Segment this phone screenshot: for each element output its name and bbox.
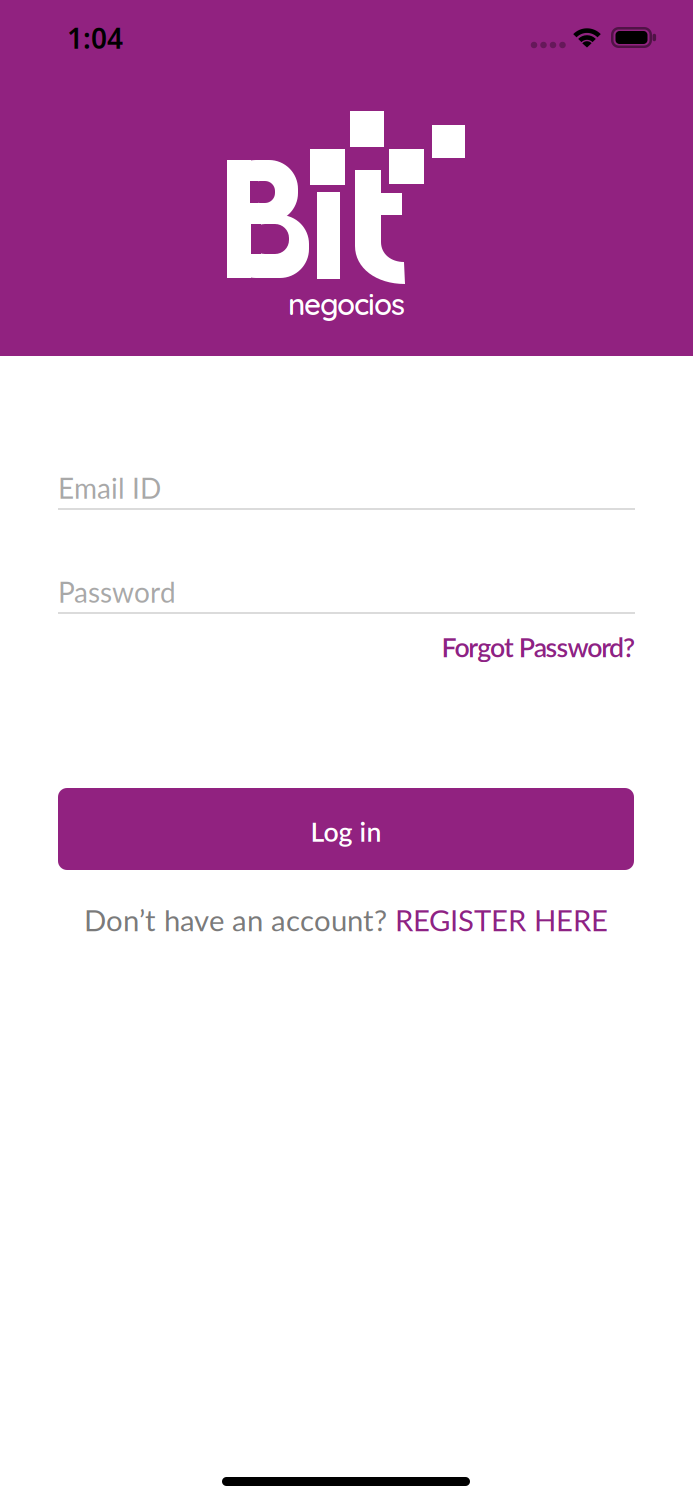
staticText: REGISTER HERE [395,902,608,938]
button[interactable]: REGISTER HERE [395,902,608,938]
staticText: Don’t have an account? [84,902,387,938]
button[interactable]: Forgot Password? [441,631,635,663]
button[interactable]: Log in [58,788,634,870]
button[interactable]: Password [58,575,635,609]
staticText: Password [58,575,176,609]
staticText: 1:04 [67,19,123,57]
button[interactable]: Email ID [58,471,635,505]
staticText: Email ID [58,471,161,505]
staticText: negocios [288,286,405,322]
staticText: Log in [310,815,381,847]
staticText: Forgot Password? [441,631,635,663]
